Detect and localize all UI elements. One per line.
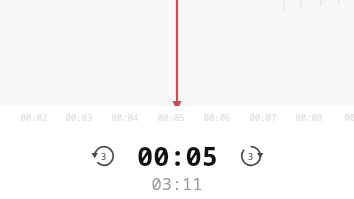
staticText: 00:04 [103, 111, 147, 123]
staticText: 00:08 [287, 111, 331, 123]
staticText: 00 [328, 111, 354, 123]
button[interactable]: 00:05 [137, 137, 218, 174]
staticText: 03:11 [0, 172, 354, 195]
button[interactable]: Rewind 3 seconds [89, 141, 119, 171]
staticText: 00:02 [12, 111, 56, 123]
staticText: 00:03 [57, 111, 101, 123]
staticText: 00:06 [195, 111, 239, 123]
button[interactable]: Forward 3 seconds [236, 141, 266, 171]
staticText: 3 [101, 150, 107, 162]
staticText: 00:05 [149, 111, 193, 123]
staticText: 3 [248, 150, 254, 162]
staticText: 00:07 [241, 111, 285, 123]
